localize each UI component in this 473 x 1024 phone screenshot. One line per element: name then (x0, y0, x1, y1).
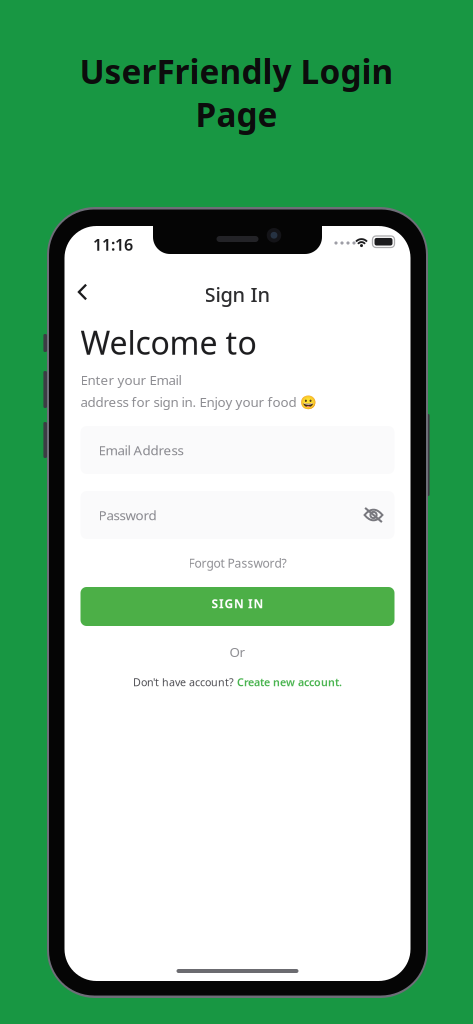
staticText: Password (98, 506, 156, 524)
staticText: UserFriendly Login (79, 49, 393, 93)
staticText: Sign In (204, 281, 270, 308)
staticText: Welcome to (80, 321, 256, 363)
staticText: Don't have account? (133, 675, 237, 689)
staticText: address for sign in. Enjoy your food 😀 (80, 393, 316, 411)
staticText: Page (195, 92, 277, 136)
button[interactable]: Forgot Password? (80, 552, 394, 574)
staticText: 11:16 (93, 234, 133, 255)
staticText: Or (229, 643, 245, 661)
staticText: Forgot Password? (188, 555, 286, 571)
staticText: Email Address (98, 441, 183, 459)
staticText: SIGN IN (211, 595, 263, 611)
button[interactable]: SIGN IN (80, 587, 394, 626)
button[interactable]: Back (65, 275, 99, 309)
button[interactable]: Create new account. (237, 675, 342, 689)
button[interactable]: Password (80, 491, 394, 539)
staticText: Create new account. (237, 675, 342, 689)
button[interactable]: Email Address (80, 426, 394, 474)
staticText: Enter your Email (80, 371, 181, 389)
